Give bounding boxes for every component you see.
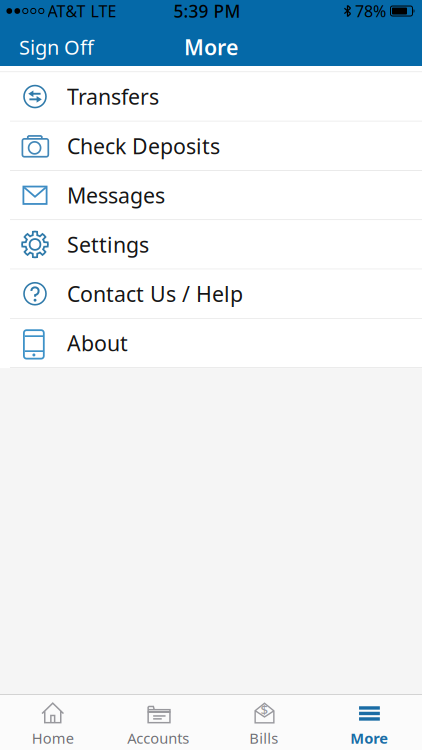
button[interactable]: Contact Us / Help [0,269,422,319]
button[interactable]: Settings [0,220,422,269]
staticText: Check Deposits [67,132,220,160]
staticText: $ [260,701,268,718]
staticText: Home [32,728,74,748]
button[interactable]: $ [211,697,316,747]
button[interactable]: More [316,697,422,747]
button[interactable]: Transfers [0,72,422,122]
button[interactable]: Sign Off [0,34,94,60]
staticText: Contact Us / Help [67,280,243,308]
button[interactable]: Messages [0,171,422,220]
staticText: Transfers [67,82,159,111]
staticText: 78% [355,0,386,22]
staticText: AT&T [48,0,86,22]
staticText: About [67,329,128,357]
staticText: Accounts [127,728,189,748]
staticText: LTE [91,0,117,22]
staticText: More [350,728,388,748]
staticText: Sign Off [19,34,94,60]
staticText: Settings [67,230,149,259]
staticText: 5:39 PM [173,0,240,22]
staticText: Messages [67,181,165,209]
button[interactable]: Accounts [105,697,211,747]
button[interactable]: Home [0,697,105,747]
button[interactable]: About [0,319,422,368]
staticText: More [184,33,238,61]
button[interactable]: Check Deposits [0,122,422,171]
staticText: Bills [249,728,278,748]
